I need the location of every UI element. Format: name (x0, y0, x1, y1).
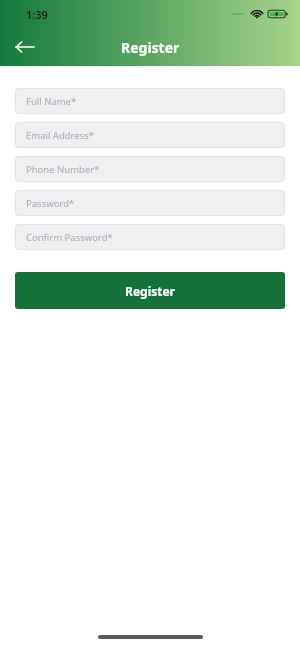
button[interactable]: Full Name* (15, 88, 285, 114)
staticText: Register (121, 38, 180, 57)
staticText: Phone Number* (26, 163, 100, 176)
staticText: Email Address* (26, 129, 95, 142)
staticText: Password* (26, 197, 75, 210)
button[interactable]: Email Address* (15, 122, 285, 148)
button[interactable]: Password* (15, 190, 285, 216)
button[interactable]: Confirm Password* (15, 224, 285, 250)
staticText: Full Name* (26, 95, 77, 108)
staticText: 1:39 (26, 7, 48, 22)
staticText: Register (125, 283, 175, 299)
button[interactable]: Phone Number* (15, 156, 285, 182)
staticText: Confirm Password* (26, 231, 113, 244)
button[interactable]: Register (15, 272, 285, 309)
button[interactable]: Back (8, 31, 40, 63)
